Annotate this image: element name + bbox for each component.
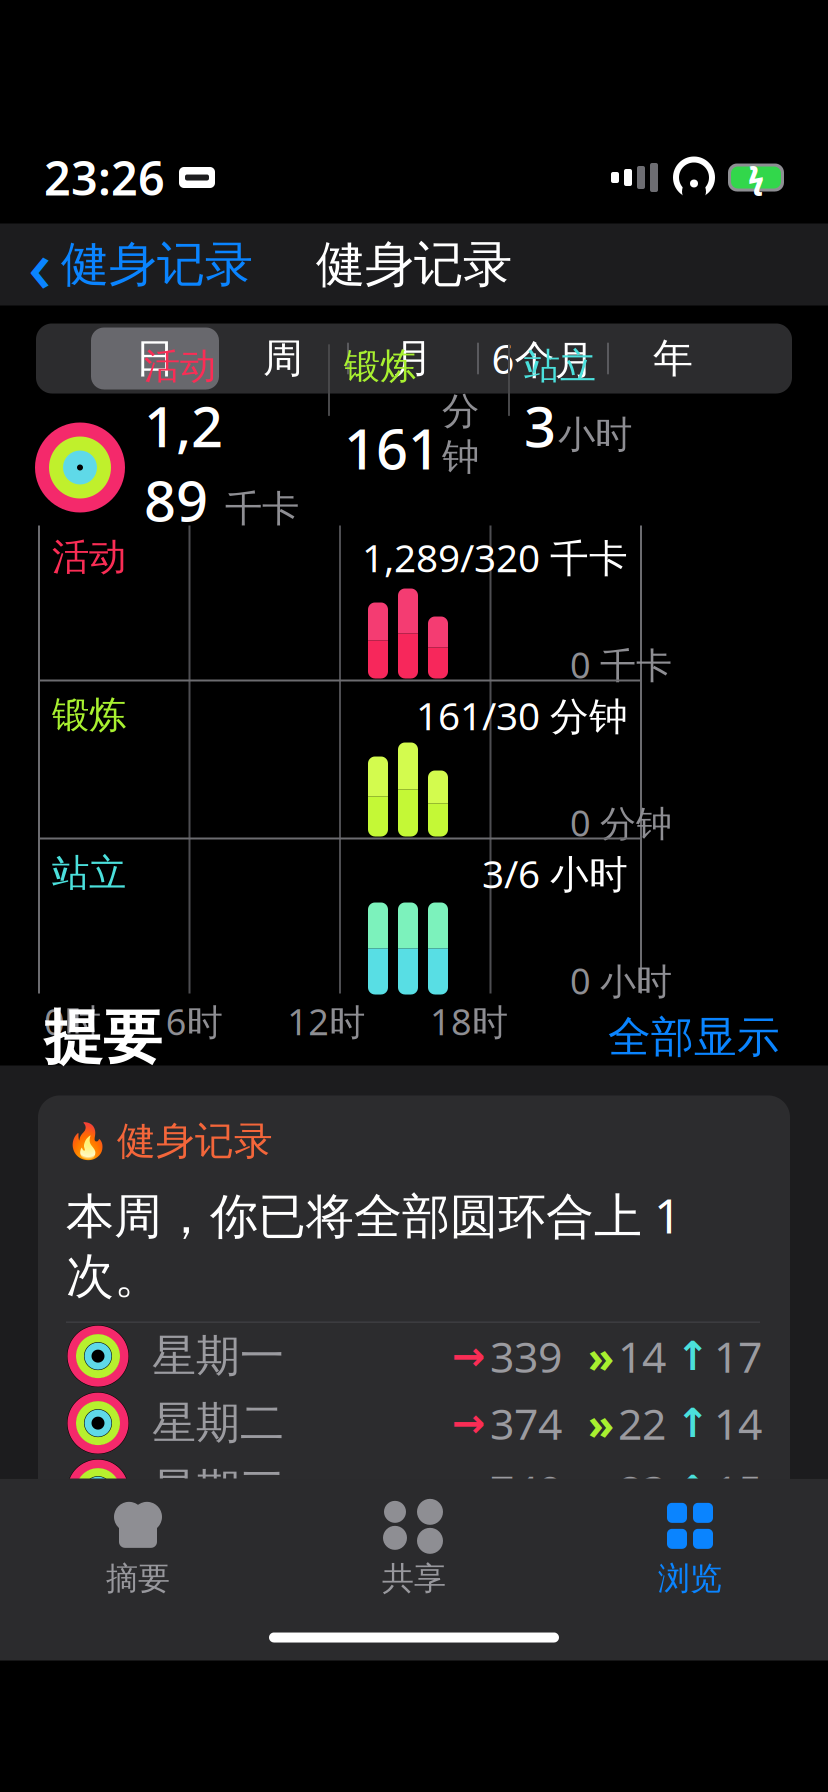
- staticText: »: [588, 1328, 614, 1384]
- staticText: 活动: [52, 534, 126, 580]
- staticText: 6时: [166, 997, 223, 1045]
- staticText: 🔥: [66, 1121, 109, 1161]
- staticText: ϟ: [748, 158, 764, 197]
- staticText: 12时: [287, 997, 365, 1045]
- staticText: ↑: [676, 1467, 710, 1513]
- button[interactable]: 星期三: [66, 1457, 762, 1524]
- button[interactable]: 6个月: [479, 327, 607, 389]
- staticText: ↑: [676, 1400, 710, 1446]
- button[interactable]: 浏览: [552, 1494, 828, 1604]
- staticText: 星期三: [152, 1463, 284, 1517]
- staticText: 0时: [44, 997, 101, 1045]
- staticText: ↑: [696, 1534, 730, 1580]
- staticText: 周: [263, 334, 303, 383]
- staticText: 分钟: [442, 388, 479, 480]
- staticText: 浏览: [658, 1559, 722, 1598]
- staticText: 14: [618, 1328, 666, 1384]
- staticText: 17: [714, 1328, 762, 1384]
- button[interactable]: 星期一: [66, 1323, 762, 1390]
- staticText: 740: [490, 1462, 562, 1518]
- staticText: 6个月: [491, 332, 594, 385]
- staticText: 千卡: [225, 486, 299, 532]
- staticText: 0 千卡: [570, 641, 672, 688]
- staticText: 日: [135, 334, 175, 383]
- staticText: 年: [653, 334, 693, 383]
- staticText: 健身记录: [61, 235, 253, 294]
- staticText: 339: [490, 1328, 562, 1384]
- button[interactable]: 日: [91, 327, 219, 389]
- staticText: 3/6 小时: [482, 847, 628, 899]
- staticText: 锻炼: [344, 344, 416, 388]
- staticText: 2024年3月24日 周日: [144, 543, 482, 591]
- staticText: 22: [618, 1395, 666, 1451]
- staticText: →: [452, 1400, 486, 1446]
- staticText: 本周，你已将全部圆环合上 1 次。: [66, 1183, 681, 1306]
- staticText: 14: [714, 1395, 762, 1451]
- staticText: 月: [393, 334, 433, 383]
- button[interactable]: 月: [349, 327, 477, 389]
- staticText: 健身记录: [117, 1117, 273, 1165]
- button[interactable]: 年: [609, 327, 737, 389]
- staticText: 星期一: [152, 1329, 284, 1383]
- staticText: 星期四: [152, 1530, 284, 1584]
- button[interactable]: ‹: [22, 209, 259, 320]
- staticText: 0 分钟: [570, 799, 672, 846]
- button[interactable]: 28: [66, 1524, 762, 1591]
- staticText: 18时: [430, 997, 508, 1045]
- staticText: 23:26: [44, 146, 165, 208]
- staticText: 161: [344, 411, 440, 485]
- staticText: →: [452, 1333, 486, 1379]
- staticText: 1,289/320 千卡: [362, 531, 628, 583]
- staticText: 全部显示: [608, 1011, 780, 1064]
- staticText: 0 小时: [570, 957, 672, 1004]
- staticText: 提要: [44, 1001, 162, 1073]
- staticText: 15: [714, 1462, 762, 1518]
- staticText: --: [638, 1529, 666, 1585]
- staticText: 站立: [524, 344, 596, 388]
- button[interactable]: 共享: [276, 1494, 552, 1604]
- staticText: ↑: [676, 1333, 710, 1379]
- button[interactable]: 摘要: [0, 1494, 276, 1604]
- staticText: 共享: [382, 1559, 446, 1598]
- staticText: 374: [490, 1395, 562, 1451]
- staticText: 1,289: [144, 388, 223, 537]
- staticText: 健身记录: [316, 234, 512, 295]
- button[interactable]: 星期二: [66, 1390, 762, 1457]
- staticText: 28: [77, 1532, 119, 1582]
- staticText: 3: [524, 388, 556, 463]
- staticText: ‹: [28, 217, 51, 312]
- staticText: 83: [618, 1462, 666, 1518]
- button[interactable]: 全部显示: [604, 1005, 784, 1070]
- staticText: 星期二: [152, 1396, 284, 1450]
- staticText: »: [588, 1395, 614, 1451]
- staticText: 小时: [558, 412, 632, 458]
- staticText: 161/30 分钟: [416, 689, 628, 741]
- staticText: 摘要: [106, 1559, 170, 1598]
- staticText: 活动: [144, 344, 216, 388]
- staticText: 锻炼: [52, 692, 126, 738]
- staticText: 站立: [52, 850, 126, 896]
- button[interactable]: 周: [219, 327, 347, 389]
